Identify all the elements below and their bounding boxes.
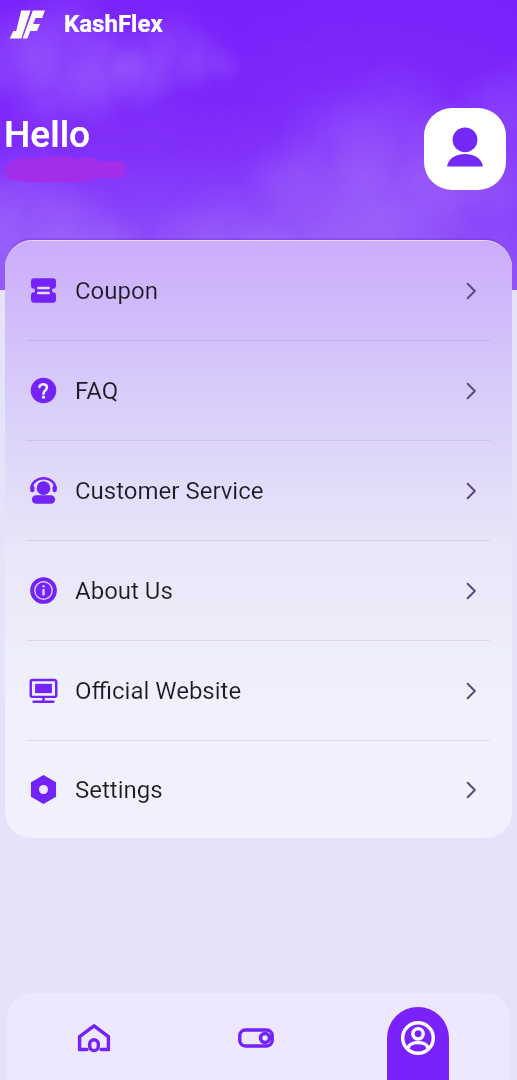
button[interactable]: About Us — [5, 541, 512, 640]
staticText: Hello — [4, 113, 91, 156]
staticText: Customer Service — [75, 477, 264, 505]
button[interactable]: FAQ — [5, 341, 512, 440]
button[interactable]: Settings — [5, 741, 512, 838]
button[interactable]: Home — [12, 993, 175, 1080]
staticText: About Us — [75, 577, 173, 605]
staticText: Coupon — [75, 277, 158, 305]
staticText: KashFlex — [64, 10, 163, 38]
button[interactable]: Customer Service — [5, 441, 512, 540]
staticText: FAQ — [75, 377, 119, 405]
button[interactable]: Wallet — [175, 993, 337, 1080]
staticText: Settings — [75, 776, 163, 804]
button[interactable]: Official Website — [5, 641, 512, 740]
staticText: Official Website — [75, 677, 242, 705]
button[interactable]: Profile — [337, 993, 499, 1080]
button[interactable]: Coupon — [5, 241, 512, 340]
button[interactable]: Profile — [424, 108, 506, 190]
